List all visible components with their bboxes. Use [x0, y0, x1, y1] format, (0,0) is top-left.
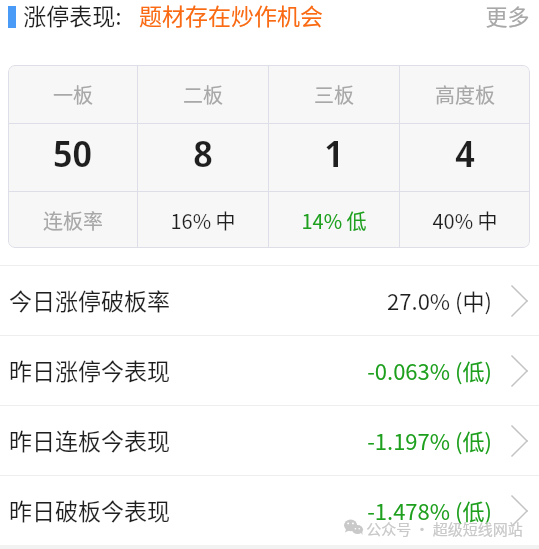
staticText: 一板 — [53, 80, 93, 109]
staticText: -1.197% (低) — [367, 424, 492, 456]
staticText: -1.478% (低) — [367, 494, 492, 526]
staticText: 涨停表现: — [23, 0, 122, 31]
staticText: 昨日涨停今表现 — [9, 353, 170, 386]
staticText: 昨日破板今表现 — [9, 493, 170, 526]
button[interactable]: 昨日破板今表现 — [0, 476, 539, 545]
staticText: 今日涨停破板率 — [9, 283, 170, 316]
staticText: 题材存在炒作机会 — [139, 0, 323, 31]
staticText: 4 — [455, 129, 475, 178]
button[interactable]: 昨日涨停今表现 — [0, 336, 539, 405]
staticText: 8 — [193, 129, 213, 178]
staticText: 公众号 · 超级短线网站 — [366, 518, 523, 540]
staticText: 27.0% (中) — [387, 284, 492, 316]
staticText: 二板 — [183, 80, 223, 109]
staticText: 1 — [324, 129, 344, 178]
staticText: 50 — [53, 129, 92, 178]
staticText: 40% 中 — [432, 206, 498, 235]
button[interactable]: 今日涨停破板率 — [0, 266, 539, 335]
staticText: 更多 — [485, 0, 530, 31]
staticText: 三板 — [314, 80, 354, 109]
staticText: -0.063% (低) — [367, 354, 492, 386]
button[interactable]: 昨日连板今表现 — [0, 406, 539, 475]
staticText: 16% 中 — [170, 206, 236, 235]
staticText: 连板率 — [43, 206, 103, 235]
staticText: 14% 低 — [301, 206, 367, 235]
staticText: 高度板 — [435, 80, 495, 109]
button[interactable]: 更多 — [485, 6, 539, 38]
staticText: 昨日连板今表现 — [9, 423, 170, 456]
